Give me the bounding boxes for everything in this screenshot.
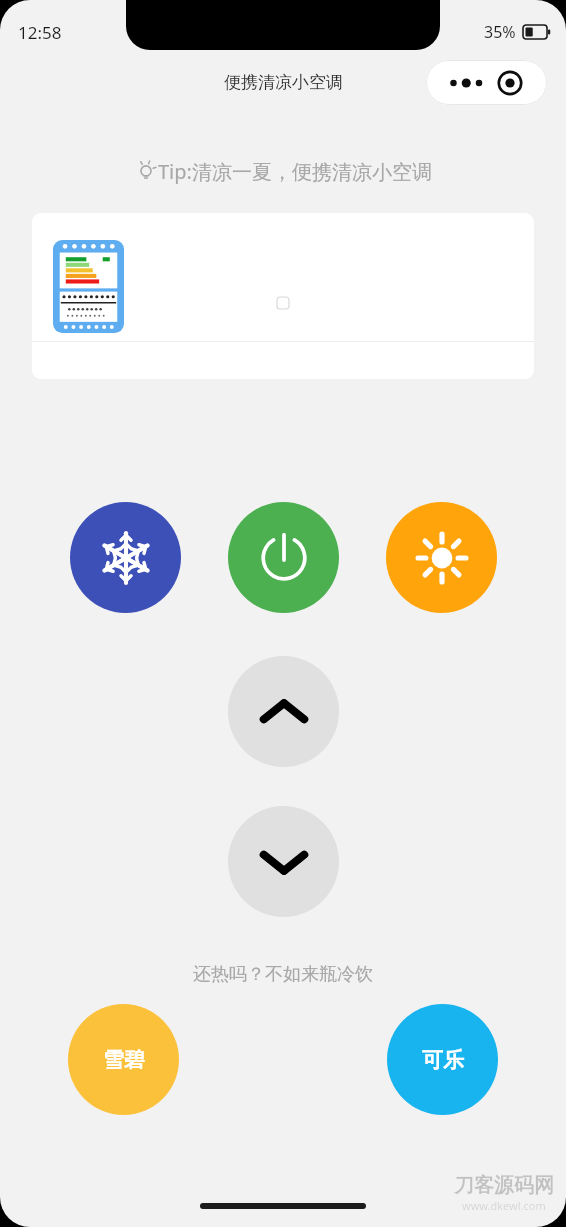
button[interactable]: Cool mode <box>70 502 181 613</box>
staticText: 35% <box>484 21 516 43</box>
button[interactable]: Power <box>228 502 339 613</box>
button[interactable]: 可乐 <box>387 1004 498 1115</box>
staticText: Tip:清凉一夏，便携清凉小空调 <box>158 158 432 185</box>
button[interactable]: Increase temperature <box>228 656 339 767</box>
button[interactable]: Decrease temperature <box>228 806 339 917</box>
staticText: 可乐 <box>422 1047 464 1073</box>
staticText: 便携清凉小空调 <box>224 72 343 93</box>
button[interactable] <box>32 213 534 379</box>
staticText: 12:58 <box>18 21 62 44</box>
staticText: 雪碧 <box>103 1047 145 1073</box>
button[interactable]: Heat mode <box>386 502 497 613</box>
staticText: 还热吗？不如来瓶冷饮 <box>193 963 373 986</box>
button[interactable]: 雪碧 <box>68 1004 179 1115</box>
button[interactable]: Menu and close <box>426 60 547 105</box>
staticText: 刀客源码网 <box>454 1173 554 1198</box>
staticText: www.dkewl.com <box>462 1198 546 1213</box>
